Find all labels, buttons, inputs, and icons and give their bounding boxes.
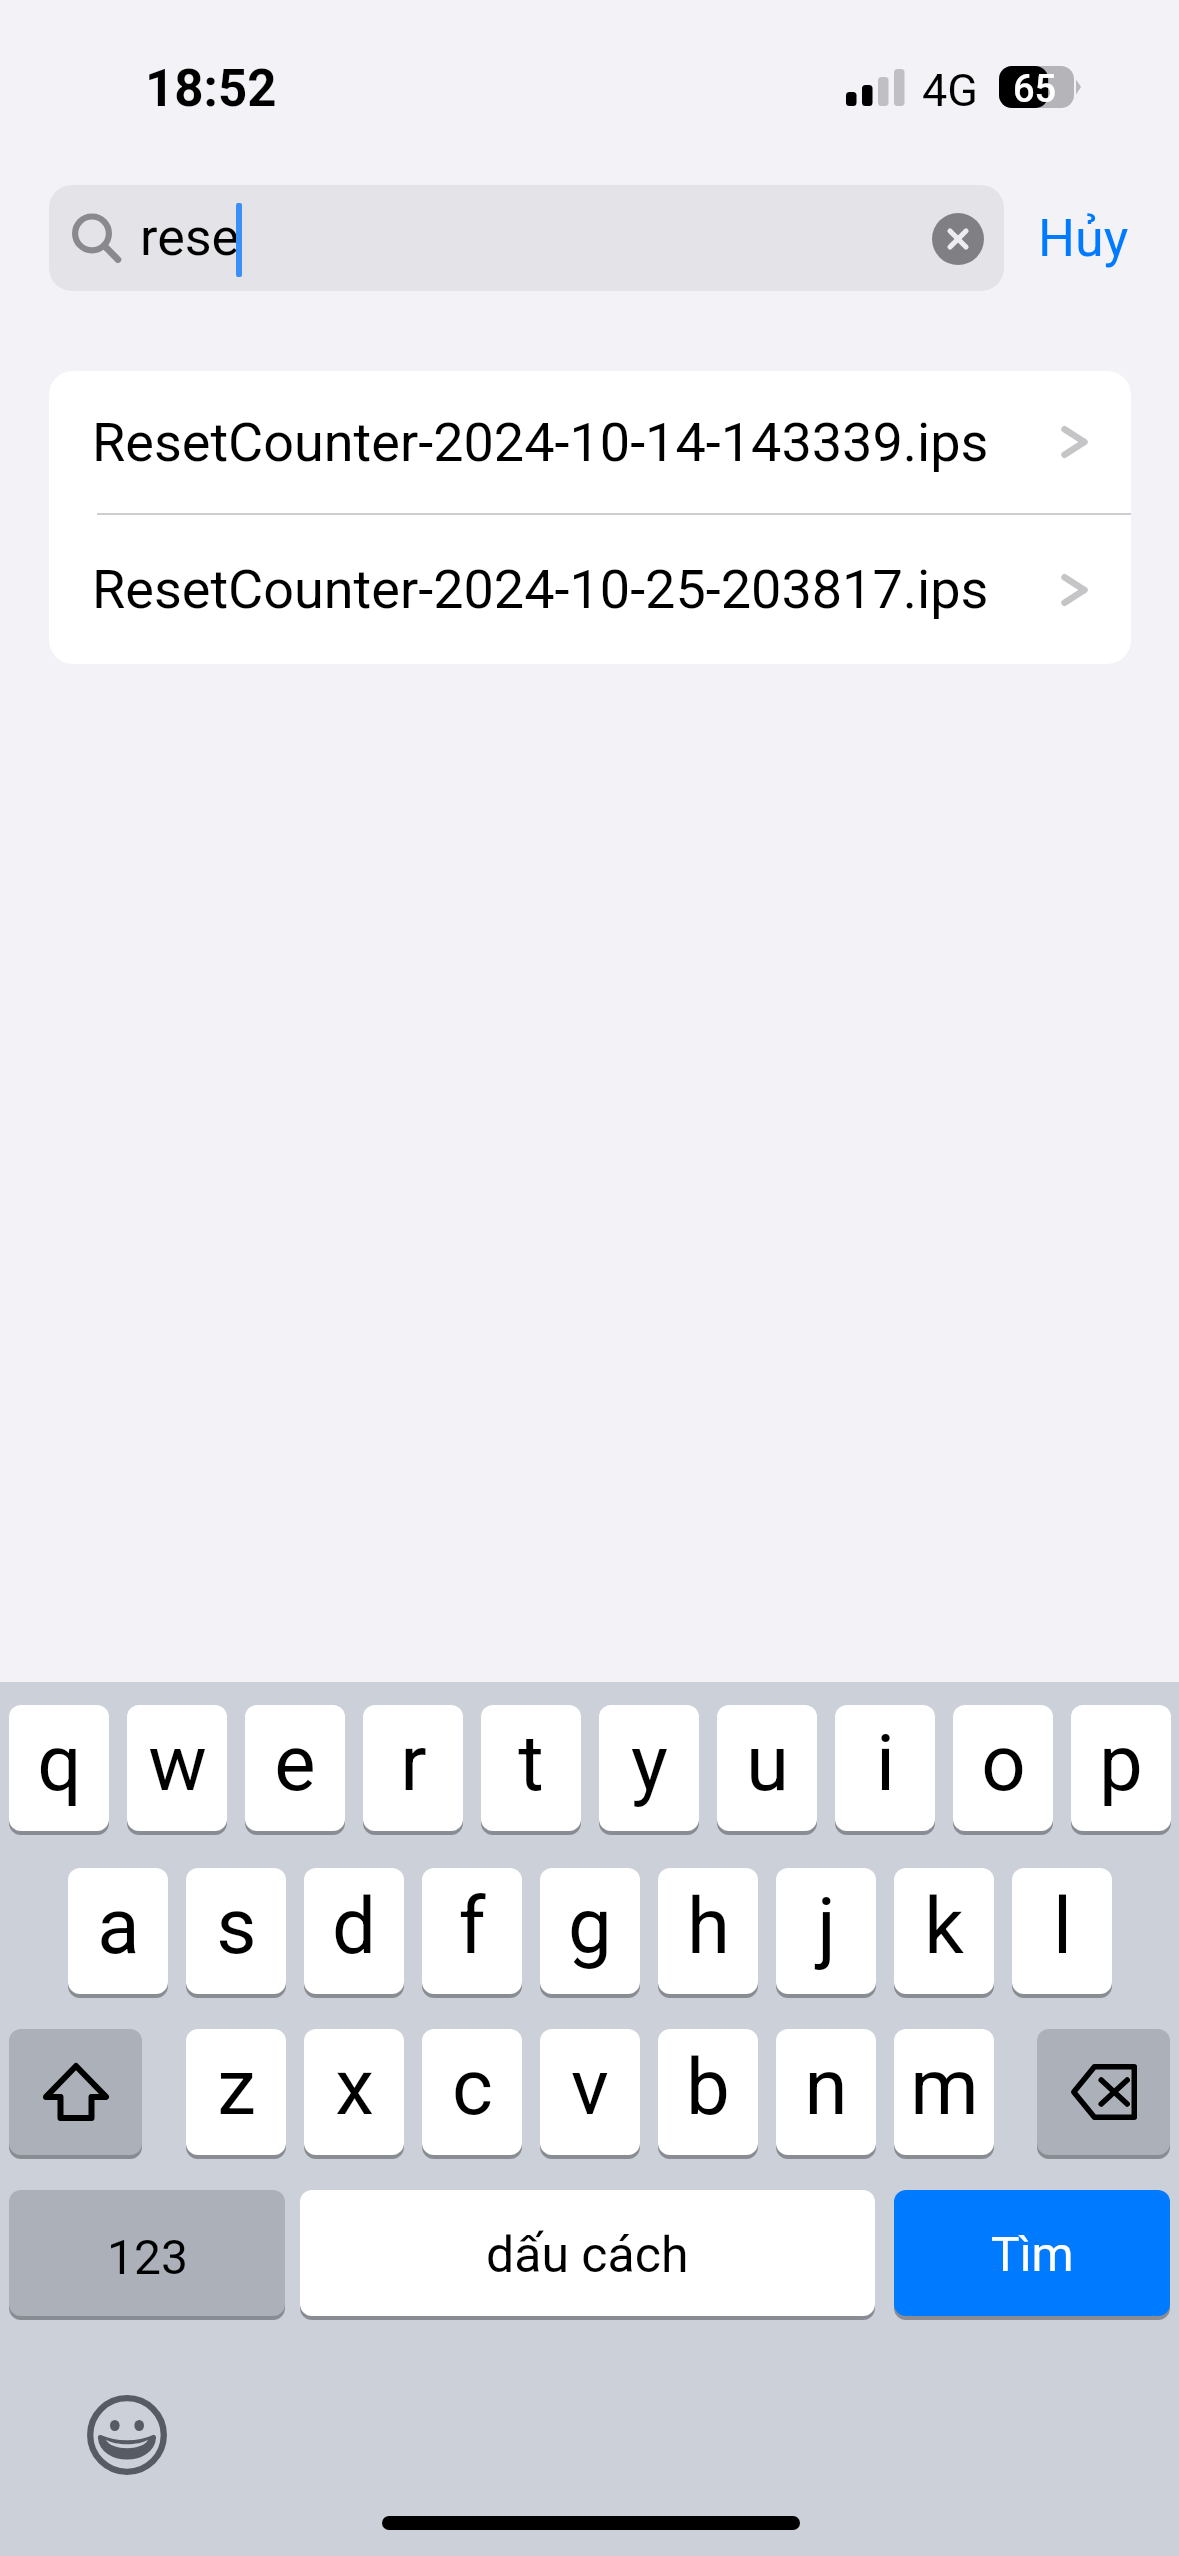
staticText: l [1053,1881,1072,1972]
button[interactable]: z [186,2029,286,2159]
button[interactable]: i [835,1705,935,1835]
staticText: f [458,1881,486,1972]
button[interactable]: ResetCounter-2024-10-25-203817.ips [49,515,1131,664]
staticText: 4G [922,64,978,117]
button[interactable]: x [304,2029,404,2159]
staticText: Tìm [991,2226,1074,2282]
button[interactable]: l [1012,1868,1112,1998]
staticText: x [335,2042,374,2133]
button[interactable]: n [776,2029,876,2159]
button[interactable]: t [481,1705,581,1835]
button[interactable]: g [540,1868,640,1998]
staticText: m [910,2042,979,2133]
staticText: a [97,1881,140,1972]
button[interactable]: p [1071,1705,1171,1835]
button[interactable]: k [894,1868,994,1998]
button[interactable]: c [422,2029,522,2159]
staticText: u [746,1718,789,1809]
staticText: j [817,1881,836,1972]
button[interactable]: rese [49,185,1004,291]
button[interactable]: m [894,2029,994,2159]
staticText: t [518,1718,544,1809]
button[interactable]: b [658,2029,758,2159]
staticText: g [568,1881,612,1972]
staticText: d [332,1881,376,1972]
staticText: y [631,1718,668,1809]
staticText: z [217,2042,256,2133]
button[interactable]: e [245,1705,345,1835]
button[interactable]: v [540,2029,640,2159]
staticText: n [804,2042,848,2133]
button[interactable]: d [304,1868,404,1998]
button[interactable]: ResetCounter-2024-10-14-143339.ips [49,371,1131,513]
staticText: c [452,2042,493,2133]
staticText: ResetCounter-2024-10-14-143339.ips [92,411,989,474]
button[interactable]: o [953,1705,1053,1835]
staticText: s [216,1881,257,1972]
staticText: v [571,2042,609,2133]
staticText: rese [140,207,240,268]
button[interactable]: y [599,1705,699,1835]
staticText: Hủy [1038,208,1129,269]
button[interactable]: Emoji keyboard [87,2395,167,2475]
staticText: ResetCounter-2024-10-25-203817.ips [92,558,989,621]
button[interactable]: Backspace [1037,2029,1170,2159]
button[interactable]: j [776,1868,876,1998]
button[interactable]: h [658,1868,758,1998]
staticText: r [400,1718,427,1809]
staticText: dấu cách [486,2226,689,2285]
staticText: 65 [1013,67,1057,112]
button[interactable]: a [68,1868,168,1998]
staticText: b [686,2042,730,2133]
button[interactable]: q [9,1705,109,1835]
staticText: h [687,1881,730,1972]
button[interactable]: Tìm [894,2190,1170,2320]
button[interactable]: r [363,1705,463,1835]
staticText: i [876,1718,895,1809]
staticText: 123 [107,2229,188,2285]
button[interactable]: w [127,1705,227,1835]
staticText: o [981,1718,1026,1809]
button[interactable]: dấu cách [300,2190,875,2320]
button[interactable]: u [717,1705,817,1835]
button[interactable]: f [422,1868,522,1998]
staticText: e [274,1718,316,1809]
staticText: k [924,1881,964,1972]
button[interactable]: Shift [9,2029,142,2159]
button[interactable]: Hủy [1011,185,1156,291]
staticText: p [1099,1718,1143,1809]
button[interactable]: 123 [9,2190,285,2320]
button[interactable]: Clear text [923,204,993,274]
staticText: 18:52 [145,59,277,119]
staticText: q [37,1718,82,1809]
button[interactable]: s [186,1868,286,1998]
staticText: w [148,1718,207,1809]
